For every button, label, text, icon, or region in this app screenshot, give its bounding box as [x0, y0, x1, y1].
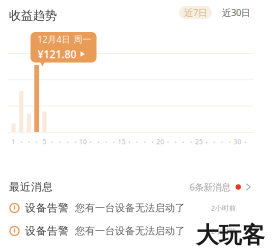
staticText: 2小时前: [211, 203, 236, 213]
button[interactable]: 近7日: [179, 6, 212, 19]
staticText: 大玩客: [196, 221, 265, 248]
staticText: 12月4日 周一: [37, 33, 91, 45]
staticText: 2小时前: [211, 226, 236, 236]
staticText: 近7日: [184, 6, 207, 19]
staticText: 设备告警: [25, 201, 69, 215]
button[interactable]: 最近消息: [0, 178, 272, 196]
staticText: ¥121.80: [37, 47, 76, 61]
staticText: 25: [195, 137, 203, 146]
staticText: 设备告警: [25, 224, 69, 238]
staticText: 您有一台设备无法启动了: [75, 225, 185, 237]
staticText: 30: [233, 137, 241, 146]
staticText: 您有一台设备无法启动了: [75, 202, 185, 214]
button[interactable]: 设备告警: [0, 200, 272, 216]
staticText: 15: [118, 137, 126, 146]
staticText: 20: [156, 137, 164, 146]
staticText: 5: [42, 137, 46, 146]
button[interactable]: 设备告警: [0, 223, 272, 239]
staticText: 近30日: [222, 6, 250, 19]
staticText: 6条新消息: [189, 181, 230, 193]
button[interactable]: 近30日: [222, 6, 250, 19]
staticText: 10: [79, 137, 87, 146]
staticText: 收益趋势: [9, 8, 57, 23]
staticText: 最近消息: [9, 180, 53, 194]
staticText: 1: [11, 137, 15, 146]
